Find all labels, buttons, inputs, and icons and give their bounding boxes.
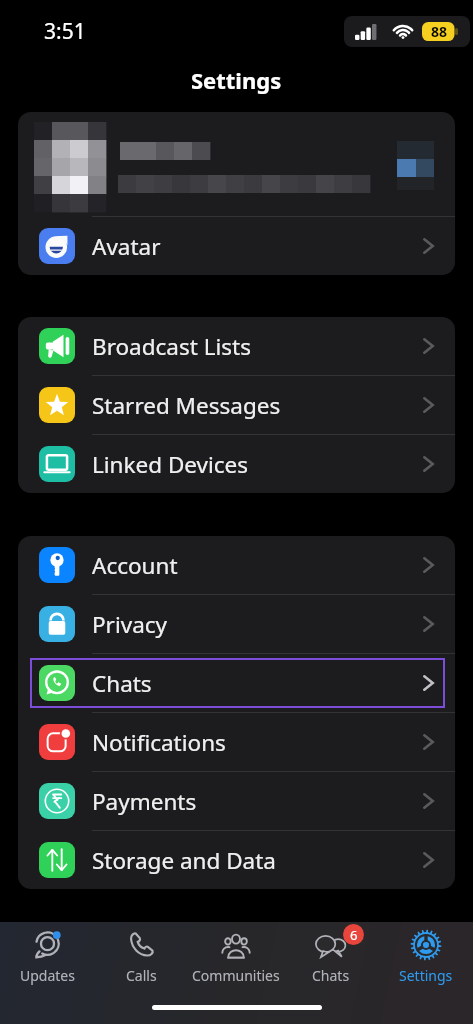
button[interactable]: Chats [18, 654, 455, 712]
staticText: Notifications [92, 727, 226, 758]
button[interactable]: 6 [283, 925, 378, 985]
staticText: Privacy [92, 609, 168, 640]
staticText: Chats [92, 668, 152, 699]
staticText: Avatar [92, 231, 161, 262]
button[interactable]: Privacy [18, 595, 455, 653]
button[interactable]: Calls [94, 925, 188, 985]
staticText: Settings [191, 65, 282, 95]
staticText: Calls [126, 966, 157, 985]
button[interactable]: Linked Devices [18, 435, 455, 493]
staticText: Linked Devices [92, 449, 249, 480]
staticText: Broadcast Lists [92, 331, 251, 362]
staticText: 6 [350, 926, 358, 944]
button[interactable]: Communities [188, 925, 283, 985]
button[interactable] [18, 112, 455, 216]
staticText: Settings [399, 966, 453, 985]
button[interactable]: Settings [378, 925, 473, 985]
staticText: Starred Messages [92, 390, 281, 421]
button[interactable]: Starred Messages [18, 376, 455, 434]
button[interactable]: Notifications [18, 713, 455, 771]
staticText: Storage and Data [92, 845, 276, 876]
staticText: Account [92, 550, 178, 581]
staticText: 88 [431, 22, 448, 41]
button[interactable]: Updates [0, 925, 94, 985]
staticText: Communities [192, 966, 280, 985]
button[interactable]: Broadcast Lists [18, 317, 455, 375]
button[interactable]: Avatar [18, 217, 455, 275]
button[interactable]: Account [18, 536, 455, 594]
staticText: Payments [92, 786, 197, 817]
button[interactable]: Payments [18, 772, 455, 830]
staticText: Updates [20, 966, 75, 985]
staticText: 3:51 [44, 17, 86, 46]
staticText: Chats [312, 966, 350, 985]
button[interactable]: Storage and Data [18, 831, 455, 889]
